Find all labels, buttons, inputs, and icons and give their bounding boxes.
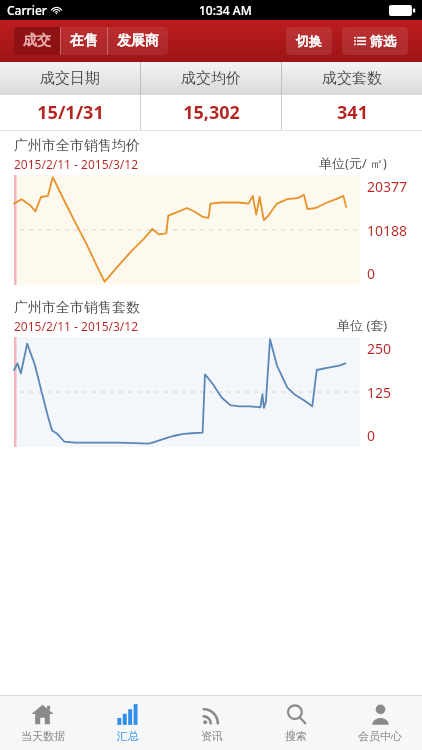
button[interactable]: 发展商 <box>108 27 168 55</box>
staticText: 125 <box>367 383 392 402</box>
button[interactable]: 筛选 <box>342 27 408 55</box>
staticText: 发展商 <box>117 32 159 50</box>
staticText: 10:34 AM <box>199 2 252 18</box>
staticText: 250 <box>367 339 392 358</box>
staticText: 15/1/31 <box>37 100 104 125</box>
staticText: 成交均价 <box>181 69 241 88</box>
staticText: 单位 (套) <box>337 316 388 334</box>
staticText: 筛选 <box>370 33 396 49</box>
staticText: 会员中心 <box>358 729 402 743</box>
staticText: 资讯 <box>201 729 223 743</box>
staticText: 0 <box>367 426 376 445</box>
button[interactable]: 搜索 <box>254 696 338 750</box>
staticText: 搜索 <box>285 729 307 743</box>
staticText: 341 <box>337 100 368 125</box>
staticText: 15,302 <box>183 100 240 125</box>
staticText: 单位(元/ ㎡) <box>319 154 388 172</box>
staticText: 当天数据 <box>21 729 65 743</box>
staticText: 2015/2/11 - 2015/3/12 <box>14 156 139 172</box>
button[interactable]: 在售 <box>61 27 107 55</box>
button[interactable]: 成交 <box>14 27 60 55</box>
button[interactable]: 当天数据 <box>0 696 85 750</box>
staticText: 在售 <box>70 32 98 50</box>
staticText: 成交套数 <box>322 69 382 88</box>
button[interactable]: 切换 <box>286 27 332 55</box>
staticText: 2015/2/11 - 2015/3/12 <box>14 318 139 334</box>
staticText: 10188 <box>367 221 408 240</box>
staticText: 成交 <box>23 32 51 50</box>
staticText: 广州市全市销售套数 <box>14 299 140 317</box>
staticText: 汇总 <box>117 729 139 743</box>
staticText: 切换 <box>296 33 322 49</box>
staticText: 0 <box>367 264 376 283</box>
button[interactable]: 汇总 <box>85 696 170 750</box>
button[interactable]: 会员中心 <box>338 696 422 750</box>
staticText: 广州市全市销售均价 <box>14 137 140 155</box>
staticText: 成交日期 <box>40 69 100 88</box>
staticText: 20377 <box>367 177 408 196</box>
button[interactable]: 资讯 <box>170 696 254 750</box>
staticText: Carrier <box>7 2 47 18</box>
